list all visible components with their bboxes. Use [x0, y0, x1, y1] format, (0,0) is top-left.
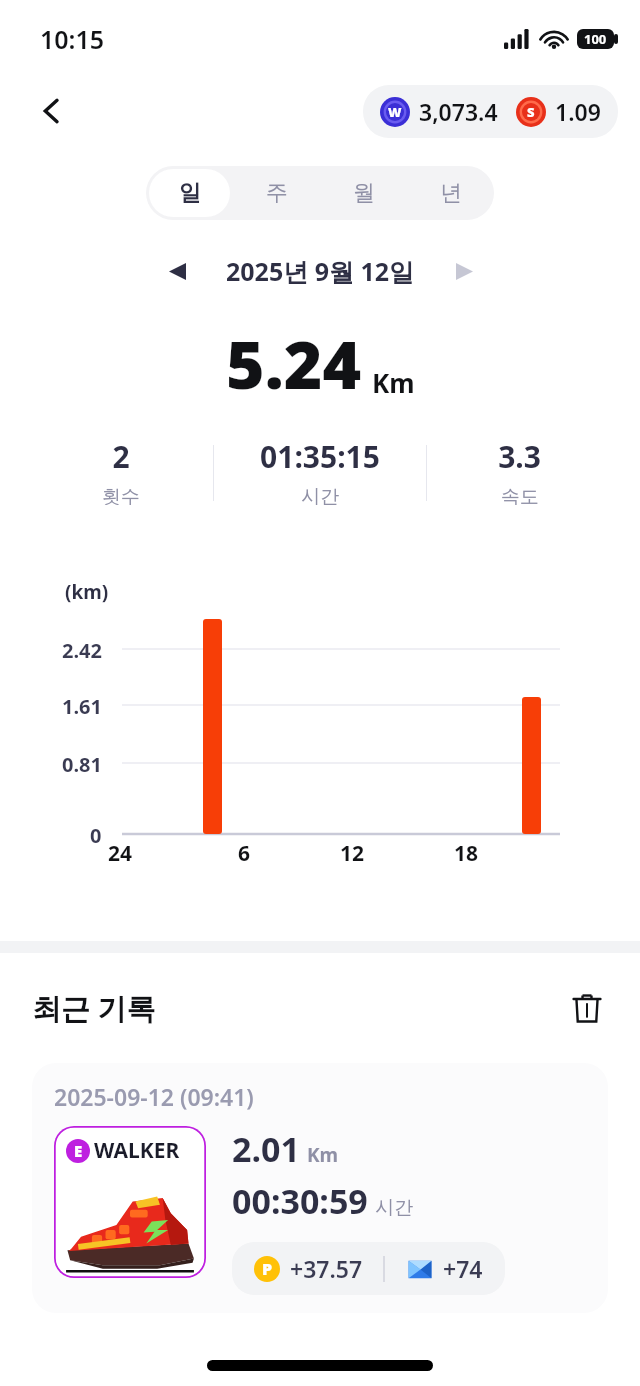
staticText: 년 [440, 179, 462, 207]
staticText: 12 [340, 839, 365, 868]
staticText: 5.24 [226, 318, 362, 408]
staticText: 2025년 9월 12일 [226, 254, 415, 288]
staticText: (km) [65, 579, 109, 605]
staticText: 3.3 [498, 436, 541, 477]
button[interactable]: 2025-09-12 (09:41) [32, 1063, 608, 1313]
staticText: Km [372, 365, 415, 400]
staticText: +37.57 [290, 1253, 363, 1284]
button[interactable]: 년 [410, 169, 491, 217]
staticText: 최근 기록 [32, 988, 156, 1028]
staticText: 월 [353, 179, 375, 207]
staticText: P [262, 1258, 273, 1280]
staticText: 01:35:15 [260, 436, 380, 477]
staticText: 일 [179, 179, 201, 207]
button[interactable]: 일 [149, 169, 230, 217]
staticText: 시간 [301, 485, 339, 509]
staticText: 6 [238, 839, 251, 868]
button[interactable]: 월 [323, 169, 404, 217]
staticText: W [388, 103, 402, 121]
button[interactable]: Walker NFT sneaker [54, 1126, 206, 1278]
button[interactable]: Delete records [560, 981, 614, 1035]
staticText: 1.09 [555, 96, 601, 127]
staticText: 주 [266, 179, 288, 207]
staticText: S [527, 103, 535, 121]
staticText: 2025-09-12 (09:41) [54, 1081, 254, 1112]
button[interactable]: Back [22, 81, 82, 141]
staticText: 00:30:59 [232, 1178, 368, 1224]
staticText: 0 [90, 822, 102, 849]
staticText: 1.61 [62, 693, 102, 720]
button[interactable]: 주 [236, 169, 317, 217]
staticText: 2.01 [232, 1126, 300, 1172]
button[interactable]: Next day [441, 248, 487, 294]
staticText: 100 [584, 30, 607, 48]
staticText: 시간 [375, 1196, 413, 1220]
staticText: 10:15 [40, 22, 105, 56]
staticText: 24 [108, 839, 133, 868]
staticText: 횟수 [102, 485, 140, 509]
button[interactable]: 3.3 [427, 436, 612, 509]
staticText: 3,073.4 [419, 96, 498, 127]
staticText: E [74, 1141, 83, 1161]
button[interactable]: 01:35:15 [214, 436, 426, 509]
button[interactable]: Previous day [154, 248, 200, 294]
staticText: Km [307, 1142, 339, 1168]
staticText: 18 [454, 839, 479, 868]
staticText: 2.42 [62, 637, 102, 664]
button[interactable]: 2 [28, 436, 213, 509]
button[interactable]: W [363, 85, 618, 138]
staticText: 0.81 [62, 751, 102, 778]
staticText: 2 [112, 436, 130, 477]
staticText: 속도 [501, 485, 539, 509]
staticText: +74 [443, 1253, 483, 1284]
staticText: WALKER [94, 1136, 180, 1165]
button[interactable]: P [232, 1242, 505, 1295]
